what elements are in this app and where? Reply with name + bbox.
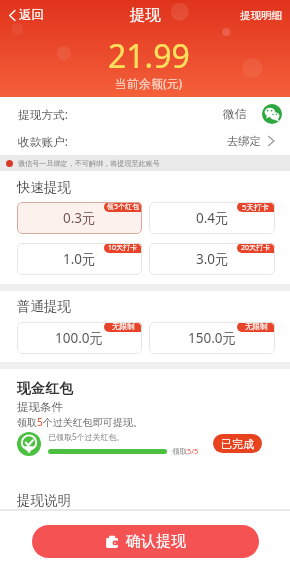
button[interactable]: 100.0元 — [17, 322, 142, 354]
staticText: 1.0元 — [63, 250, 96, 268]
staticText: 快速提现 — [17, 179, 71, 196]
staticText: 无限制 — [112, 322, 135, 332]
button[interactable]: 返回 — [0, 3, 52, 27]
staticText: 普通提现 — [17, 298, 71, 315]
other: WeChat — [262, 104, 282, 124]
staticText: 20天打卡 — [241, 243, 271, 253]
staticText: 领5个红包 — [107, 202, 140, 212]
staticText: 领取5个过关红包即可提现。 — [17, 415, 143, 429]
staticText: 微信号一旦绑定，不可解绑，将提现至此账号 — [18, 159, 160, 168]
button[interactable]: 150.0元 — [149, 322, 275, 354]
staticText: 3.0元 — [196, 250, 229, 268]
button[interactable]: 提现方式: — [0, 97, 290, 126]
staticText: 无限制 — [245, 322, 268, 332]
button[interactable]: 提现明细 — [232, 5, 290, 26]
staticText: 提现方式: — [18, 106, 68, 122]
staticText: 0.3元 — [63, 209, 96, 227]
staticText: 提现说明 — [17, 492, 71, 509]
button[interactable]: 0.3元 — [17, 202, 142, 234]
staticText: 收款账户: — [18, 133, 68, 149]
staticText: 提现 — [0, 5, 290, 25]
staticText: 21.99 — [108, 34, 190, 78]
staticText: 提现条件 — [17, 400, 63, 414]
staticText: 去绑定 — [227, 134, 261, 148]
button[interactable]: 3.0元 — [149, 243, 275, 275]
staticText: 150.0元 — [188, 329, 237, 347]
staticText: 10天打卡 — [108, 243, 138, 253]
button[interactable]: 收款账户: — [0, 126, 290, 155]
button[interactable]: 0.4元 — [149, 202, 275, 234]
staticText: 返回 — [19, 7, 44, 23]
button[interactable]: 已完成 — [213, 434, 262, 453]
staticText: 100.0元 — [55, 329, 104, 347]
staticText: 0.4元 — [196, 209, 229, 227]
staticText: 已领取5个过关红包。 — [48, 431, 125, 442]
staticText: 确认提现 — [126, 532, 186, 551]
staticText: 5天打卡 — [242, 202, 270, 212]
staticText: 领取5/5 — [172, 446, 199, 456]
staticText: 提现明细 — [240, 9, 282, 22]
staticText: 当前余额(元) — [115, 75, 183, 91]
staticText: 微信 — [223, 107, 247, 122]
staticText: 已完成 — [221, 437, 254, 451]
button[interactable]: 1.0元 — [17, 243, 142, 275]
button[interactable]: 确认提现 — [32, 525, 259, 558]
staticText: 现金红包 — [17, 380, 73, 398]
